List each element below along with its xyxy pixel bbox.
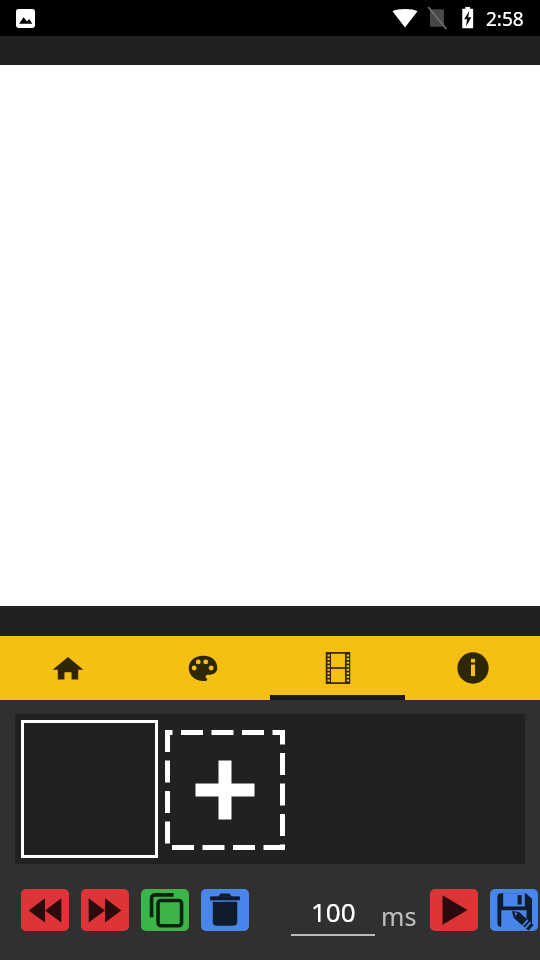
button[interactable]: Duplicate xyxy=(141,889,189,931)
button[interactable]: Save xyxy=(490,889,538,931)
staticText: ms xyxy=(381,899,417,933)
button[interactable]: Info xyxy=(405,636,540,700)
button[interactable]: Play xyxy=(430,889,478,931)
button[interactable]: 100 xyxy=(291,886,375,936)
staticText: 100 xyxy=(311,894,356,929)
button[interactable]: Rewind xyxy=(21,889,69,931)
button[interactable]: Frame 1 xyxy=(21,720,158,858)
button[interactable]: Add frame xyxy=(165,730,285,850)
staticText: 2:58 xyxy=(486,6,524,32)
button[interactable]: Fast forward xyxy=(81,889,129,931)
button[interactable]: Delete xyxy=(201,889,249,931)
button[interactable]: Frames xyxy=(270,636,405,700)
button[interactable]: Palette xyxy=(135,636,270,700)
button[interactable]: Home xyxy=(0,636,135,700)
